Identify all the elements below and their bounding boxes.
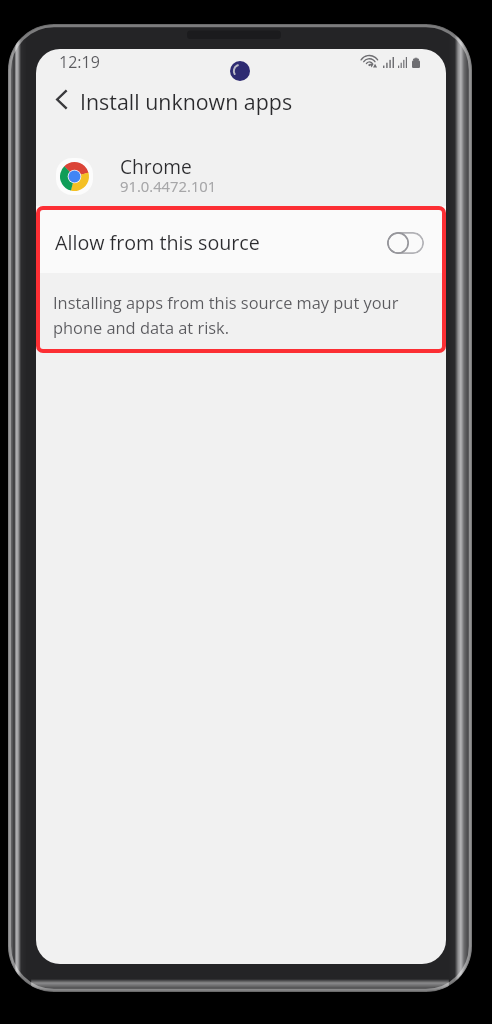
staticText: Installing apps from this source may put… xyxy=(53,291,399,338)
staticText: Allow from this source xyxy=(55,229,387,256)
button[interactable]: Allow from this source xyxy=(387,232,424,254)
staticText: 91.0.4472.101 xyxy=(120,176,217,196)
button[interactable]: Chrome xyxy=(36,145,446,207)
staticText: 12:19 xyxy=(59,51,100,73)
button[interactable]: Back xyxy=(43,81,79,117)
staticText: Install unknown apps xyxy=(80,87,293,116)
button[interactable]: Allow from this source xyxy=(36,206,446,273)
staticText: Chrome xyxy=(120,153,192,179)
